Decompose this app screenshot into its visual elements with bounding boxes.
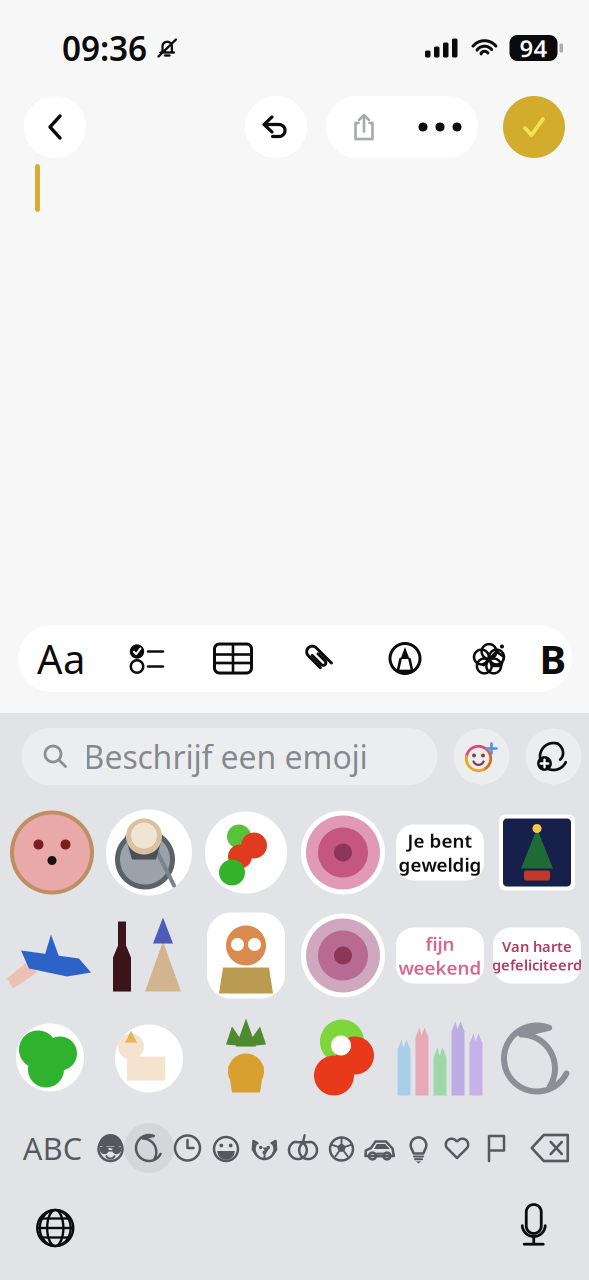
button[interactable]: Sticker (197, 801, 294, 903)
button[interactable]: Emoji category (207, 1121, 245, 1175)
button[interactable]: Emoji category (91, 1121, 130, 1175)
staticText: Beschrijf een emoji (83, 735, 367, 778)
button[interactable]: Switch keyboard (20, 1193, 90, 1263)
button[interactable]: Sticker (197, 1007, 294, 1109)
button[interactable]: ABC (13, 1121, 91, 1175)
staticText: Aa (37, 632, 85, 685)
button[interactable]: Delete (523, 1121, 579, 1175)
button[interactable]: Emoji category (476, 1121, 515, 1175)
button[interactable]: Sticker (488, 904, 585, 1006)
button[interactable]: Sticker (100, 1007, 197, 1109)
button[interactable]: Undo (245, 96, 307, 158)
button[interactable]: Sticker (488, 801, 585, 903)
staticText: 94 (519, 32, 547, 64)
button[interactable]: Sticker (391, 1007, 488, 1109)
button[interactable]: Emoji category (438, 1121, 476, 1175)
button[interactable]: Add sticker (525, 728, 581, 784)
button[interactable]: More options (402, 96, 478, 158)
button[interactable]: Emoji category (361, 1121, 399, 1175)
button[interactable]: Sticker (294, 801, 391, 903)
button[interactable]: Done (503, 96, 565, 158)
button[interactable]: Sticker (3, 904, 100, 1006)
staticText: Van harte (502, 936, 572, 956)
staticText: weekend (398, 955, 481, 980)
button[interactable]: Emoji category (245, 1121, 284, 1175)
staticText: fijn (425, 931, 454, 956)
button[interactable]: Sticker (197, 904, 294, 1006)
staticText: B (539, 632, 566, 685)
button[interactable]: Apple Intelligence (448, 625, 534, 692)
button[interactable]: Emoji category (168, 1121, 207, 1175)
button[interactable]: Emoji category (322, 1121, 361, 1175)
button[interactable]: Attach (276, 625, 362, 692)
button[interactable]: Sticker (391, 801, 488, 903)
button[interactable]: Sticker (294, 1007, 391, 1109)
staticText: geweldig (398, 852, 481, 877)
button[interactable]: Emoji category (284, 1121, 322, 1175)
staticText: gefeliciteerd (492, 955, 582, 974)
button[interactable]: Emoji category (399, 1121, 438, 1175)
staticText: ABC (23, 1128, 82, 1168)
button[interactable]: Sticker (3, 1007, 100, 1109)
button[interactable]: Genmoji (453, 728, 509, 784)
button[interactable]: Format (18, 625, 104, 692)
button[interactable]: Share (326, 96, 402, 158)
button[interactable]: Emoji category (130, 1121, 168, 1175)
button[interactable]: Back (24, 96, 86, 158)
button[interactable]: Sticker (488, 1007, 585, 1109)
staticText: Je bent (407, 828, 472, 853)
button[interactable]: Table (190, 625, 276, 692)
button[interactable]: Dictate (499, 1193, 569, 1263)
staticText: 09:36 (62, 26, 147, 70)
button[interactable]: Sticker (3, 801, 100, 903)
button[interactable]: Sticker (294, 904, 391, 1006)
button[interactable]: Checklist (104, 625, 190, 692)
button[interactable]: Sticker (100, 801, 197, 903)
button[interactable]: Sticker (391, 904, 488, 1006)
button[interactable]: Sticker (100, 904, 197, 1006)
button[interactable]: Markup (362, 625, 448, 692)
